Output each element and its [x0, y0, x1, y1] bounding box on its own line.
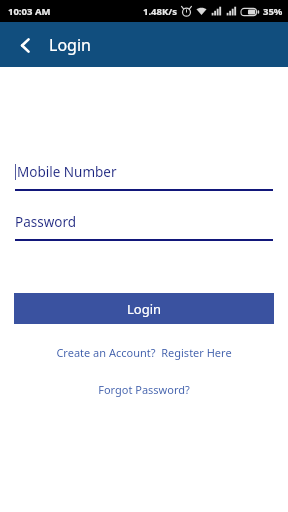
button[interactable]: Create an Account? Register Here [0, 345, 288, 360]
staticText: 10:03 AM [8, 5, 51, 18]
staticText: Create an Account? Register Here [56, 345, 232, 360]
staticText: 35% [263, 5, 283, 18]
staticText: Login [49, 34, 91, 56]
staticText: Password [15, 213, 77, 231]
staticText: Login [127, 300, 162, 318]
button[interactable]: Back [9, 29, 41, 61]
button[interactable]: Mobile Number [15, 163, 273, 191]
button[interactable]: Password [15, 213, 273, 241]
button[interactable]: Forgot Password? [0, 382, 288, 397]
button[interactable]: Login [14, 293, 274, 324]
staticText: Mobile Number [17, 163, 117, 181]
staticText: Forgot Password? [98, 382, 190, 397]
staticText: 1.48K/s [143, 5, 177, 18]
